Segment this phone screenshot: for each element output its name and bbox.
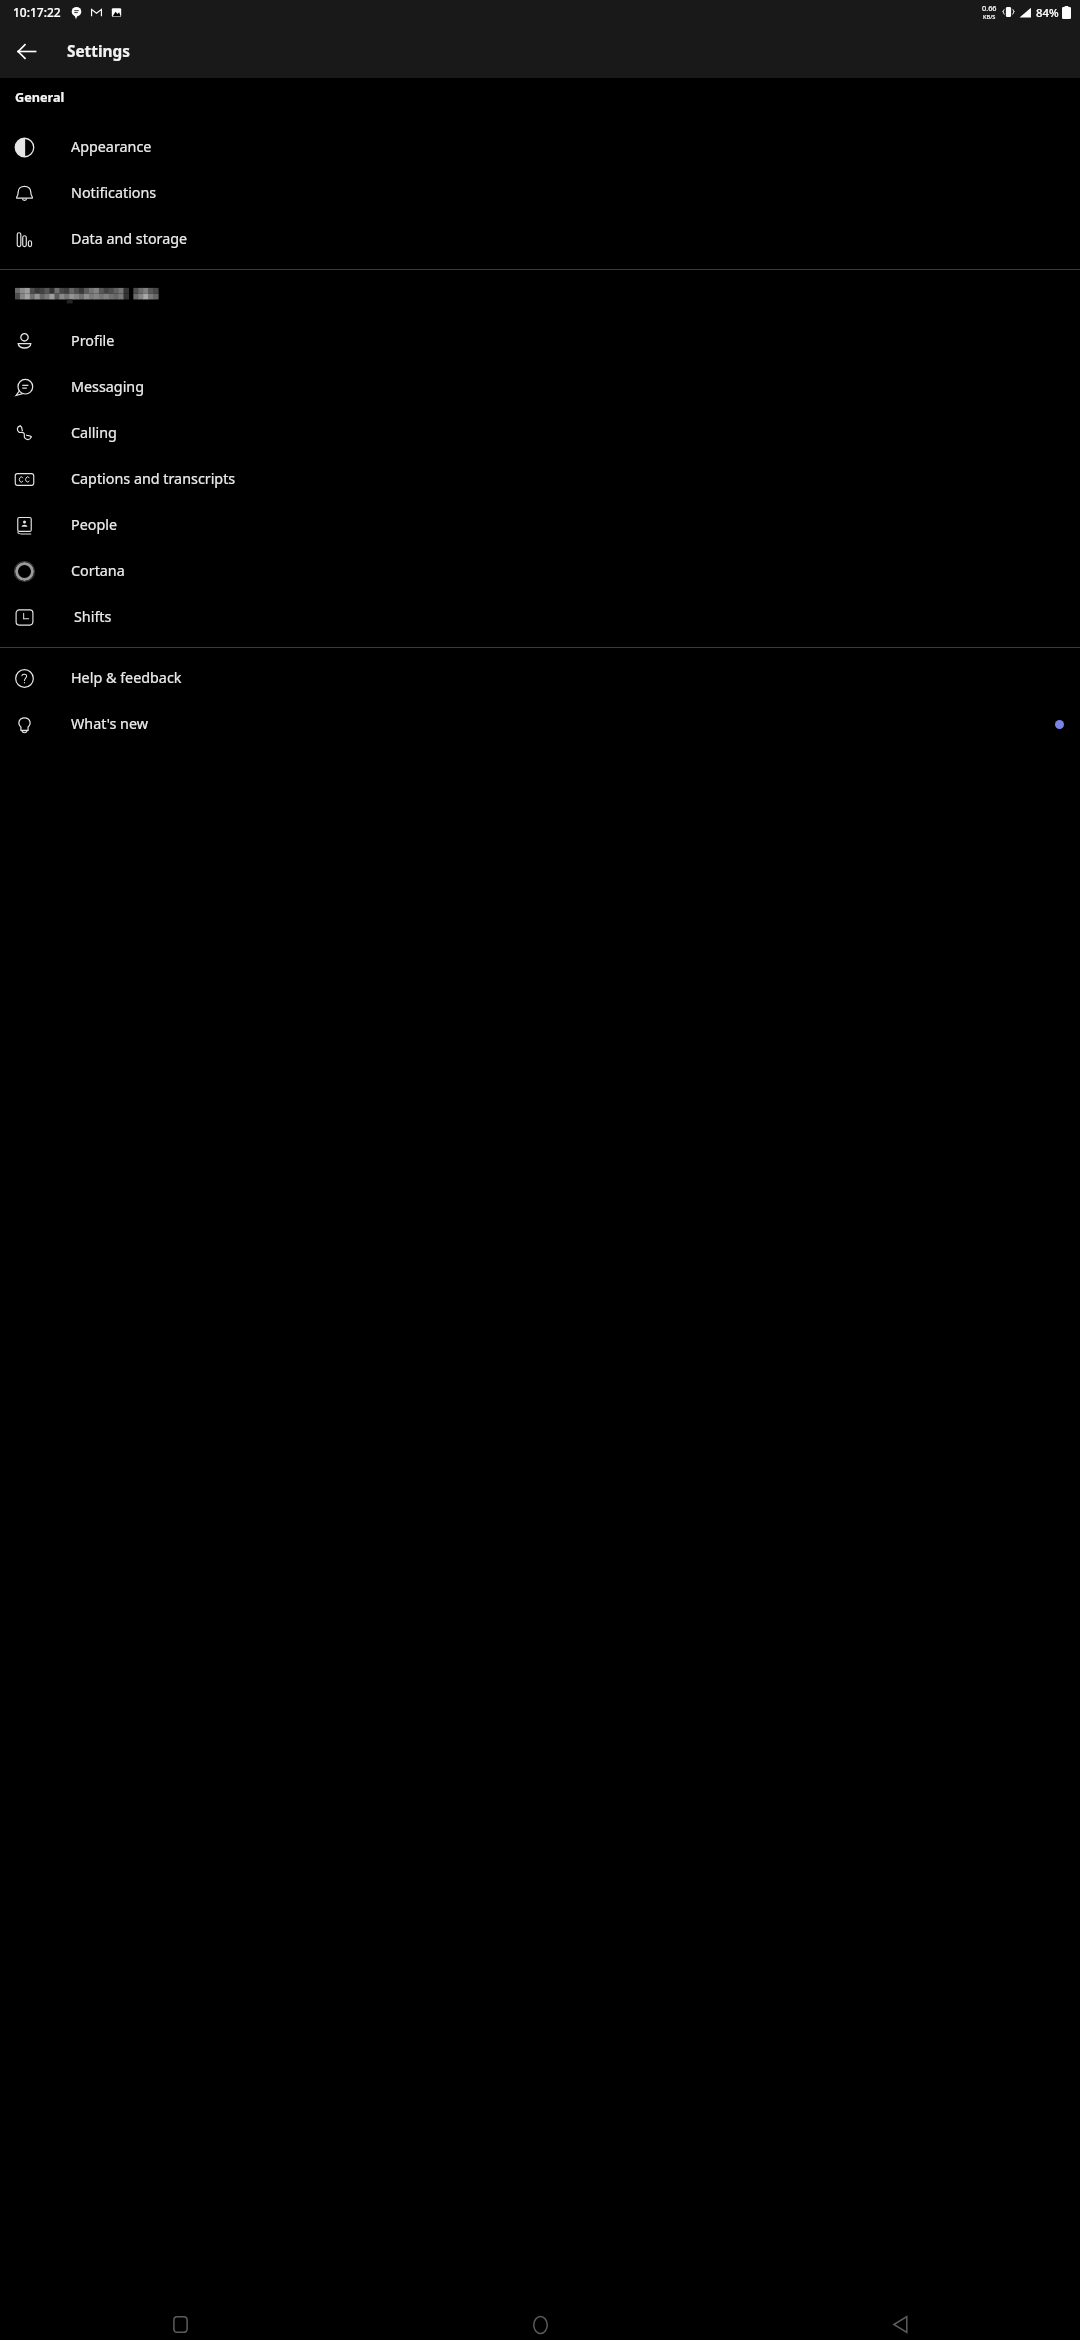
- staticText: 0.66: [982, 3, 997, 13]
- button[interactable]: Captions and transcripts: [0, 456, 1080, 502]
- staticText: General: [15, 88, 65, 105]
- button[interactable]: Cortana: [0, 548, 1080, 594]
- staticText: Notifications: [71, 183, 157, 203]
- button[interactable]: Appearance: [0, 124, 1080, 170]
- staticText: Data and storage: [71, 229, 188, 249]
- button[interactable]: Messaging: [0, 364, 1080, 410]
- staticText: People: [71, 515, 118, 535]
- staticText: Messaging: [71, 377, 145, 397]
- button[interactable]: What's new: [0, 701, 1080, 747]
- button[interactable]: Data and storage: [0, 216, 1080, 262]
- staticText: Shifts: [74, 607, 112, 627]
- button[interactable]: Back: [720, 2309, 1080, 2340]
- staticText: What's new: [71, 714, 148, 734]
- button[interactable]: People: [0, 502, 1080, 548]
- staticText: Settings: [67, 41, 130, 62]
- staticText: Cortana: [71, 561, 125, 581]
- staticText: 10:17:22: [13, 4, 61, 20]
- button[interactable]: Shifts: [0, 594, 1080, 640]
- button[interactable]: Profile: [0, 318, 1080, 364]
- button[interactable]: Home: [360, 2309, 720, 2340]
- staticText: Appearance: [71, 137, 152, 157]
- button[interactable]: Calling: [0, 410, 1080, 456]
- button[interactable]: Back: [8, 33, 44, 69]
- staticText: Help & feedback: [71, 668, 182, 688]
- button[interactable]: Notifications: [0, 170, 1080, 216]
- staticText: Calling: [71, 423, 117, 443]
- staticText: KB/S: [983, 13, 996, 21]
- button[interactable]: Recents: [0, 2309, 360, 2340]
- staticText: Captions and transcripts: [71, 469, 236, 489]
- staticText: 84%: [1036, 5, 1059, 20]
- button[interactable]: Help & feedback: [0, 655, 1080, 701]
- staticText: Profile: [71, 331, 115, 351]
